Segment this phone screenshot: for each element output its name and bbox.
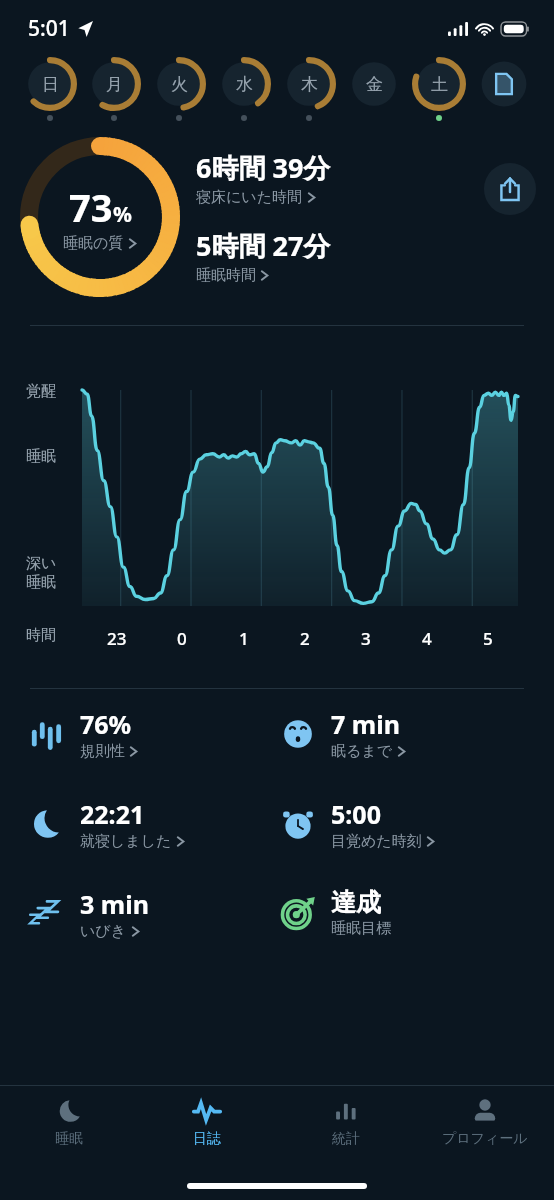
staticText: 76% bbox=[80, 707, 132, 741]
button[interactable]: 木 bbox=[278, 56, 339, 121]
staticText: 日誌 bbox=[193, 1130, 221, 1148]
staticText: 22:21 bbox=[80, 797, 145, 831]
button[interactable]: 22:21 bbox=[26, 787, 277, 861]
staticText: 睡眠 bbox=[26, 573, 56, 592]
button[interactable]: 火 bbox=[148, 56, 209, 121]
staticText: 木 bbox=[301, 74, 318, 95]
staticText: 5時間 27分 bbox=[196, 227, 331, 264]
staticText: 3 min bbox=[80, 887, 149, 921]
button[interactable]: 日 bbox=[20, 56, 80, 121]
button[interactable]: 睡眠 bbox=[0, 1096, 138, 1170]
staticText: 目覚めた時刻 bbox=[331, 832, 422, 851]
staticText: 日 bbox=[42, 74, 59, 95]
staticText: 睡眠目標 bbox=[331, 919, 391, 938]
staticText: 達成 bbox=[331, 887, 381, 918]
staticText: 2 bbox=[300, 627, 310, 650]
staticText: 5:01 bbox=[28, 14, 70, 43]
button[interactable]: 76% bbox=[26, 697, 277, 771]
button[interactable]: 3 min bbox=[26, 877, 277, 951]
staticText: 4 bbox=[422, 627, 432, 650]
button[interactable]: Share bbox=[484, 163, 536, 215]
button[interactable]: 日誌 bbox=[138, 1096, 276, 1170]
staticText: いびき bbox=[80, 922, 127, 941]
staticText: 睡眠時間 bbox=[196, 266, 256, 285]
staticText: 金 bbox=[366, 74, 383, 95]
button[interactable]: 6時間 39分 bbox=[196, 149, 331, 207]
staticText: 6時間 39分 bbox=[196, 149, 331, 186]
staticText: 73 bbox=[69, 181, 113, 233]
staticText: 眠るまで bbox=[331, 742, 393, 761]
button[interactable]: 統計 bbox=[276, 1096, 415, 1170]
staticText: 睡眠の質 bbox=[63, 234, 124, 253]
staticText: 0 bbox=[177, 627, 187, 650]
button[interactable]: 達成 bbox=[277, 877, 528, 948]
staticText: % bbox=[113, 200, 132, 229]
staticText: 寝床にいた時間 bbox=[196, 188, 303, 207]
staticText: 睡眠 bbox=[55, 1130, 83, 1148]
staticText: 5:00 bbox=[331, 797, 381, 831]
button[interactable]: Notes bbox=[473, 56, 534, 121]
button[interactable]: 73 bbox=[18, 135, 182, 299]
staticText: 覚醒 bbox=[26, 382, 56, 401]
button[interactable]: 月 bbox=[84, 56, 144, 121]
staticText: 就寝しました bbox=[80, 832, 172, 851]
staticText: 7 min bbox=[331, 707, 400, 741]
staticText: 時間 bbox=[26, 626, 56, 645]
button[interactable]: 土 bbox=[408, 56, 469, 121]
staticText: 深い bbox=[26, 554, 57, 573]
button[interactable]: 水 bbox=[213, 56, 274, 121]
staticText: プロフィール bbox=[442, 1130, 528, 1148]
staticText: 月 bbox=[106, 74, 123, 95]
staticText: 土 bbox=[431, 74, 448, 95]
staticText: 規則性 bbox=[80, 742, 125, 761]
staticText: 3 bbox=[361, 627, 371, 650]
staticText: 5 bbox=[483, 627, 493, 650]
staticText: 統計 bbox=[332, 1130, 360, 1148]
button[interactable]: 5時間 27分 bbox=[196, 227, 331, 285]
button[interactable]: 7 min bbox=[277, 697, 528, 771]
staticText: 火 bbox=[171, 74, 188, 95]
staticText: 水 bbox=[236, 74, 253, 95]
button[interactable]: 金 bbox=[343, 56, 404, 121]
staticText: 睡眠 bbox=[26, 447, 56, 466]
button[interactable]: プロフィール bbox=[415, 1096, 554, 1170]
button[interactable]: 5:00 bbox=[277, 787, 528, 861]
staticText: 23 bbox=[107, 627, 127, 650]
staticText: 1 bbox=[239, 627, 249, 650]
